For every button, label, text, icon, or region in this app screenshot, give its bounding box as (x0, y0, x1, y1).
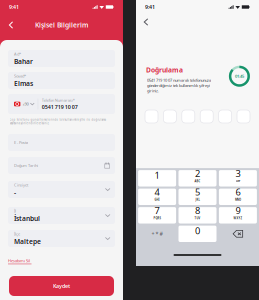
button[interactable]: E - Posta (8, 134, 115, 151)
button[interactable]: 2 (178, 170, 216, 186)
staticText: Soyad* (14, 73, 26, 78)
staticText: +90 (23, 101, 29, 107)
staticText: Cep Telefonu güncellemelerinde tek kulla… (9, 118, 105, 125)
staticText: PQRS (154, 216, 161, 220)
button[interactable]: Kaydet (9, 276, 114, 296)
button[interactable]: Soyad* (8, 72, 115, 89)
button[interactable]: Ad* (8, 50, 115, 67)
button[interactable]: Back (139, 14, 153, 30)
staticText: E - Posta (14, 140, 28, 145)
staticText: Maltepe (14, 237, 41, 246)
button[interactable]: 7 (138, 207, 176, 223)
button[interactable]: 9 (219, 207, 257, 223)
staticText: MNO (235, 198, 241, 201)
staticText: İlçe (14, 231, 20, 236)
staticText: 2 (195, 167, 200, 179)
staticText: 0541 719 10 07 numaralı telefonunuza gön… (147, 77, 211, 93)
button[interactable]: Cinsiyet (8, 181, 115, 198)
staticText: Doğrulama (146, 66, 183, 74)
staticText: Bahar (14, 57, 33, 66)
staticText: JKL (195, 198, 199, 201)
button[interactable]: İlçe (8, 230, 115, 247)
button[interactable]: Hesabımı Sil (8, 258, 31, 264)
staticText: 01:45 (235, 73, 244, 79)
button[interactable]: 5 (178, 189, 216, 205)
button[interactable]: 0 (178, 226, 216, 242)
button[interactable]: 1 (138, 170, 176, 186)
staticText: Elmas (14, 79, 33, 88)
button[interactable]: 4 (138, 189, 176, 205)
staticText: Kaydet (53, 282, 70, 290)
staticText: - (14, 188, 16, 197)
staticText: 9 (235, 204, 240, 216)
button[interactable]: Back (3, 14, 18, 36)
staticText: İstanbul (14, 214, 40, 223)
staticText: Kişisel Bilgilerim (35, 21, 88, 29)
staticText: 4 (155, 186, 160, 198)
button[interactable]: Delete (219, 226, 257, 242)
staticText: 7 (155, 204, 160, 216)
staticText: ABC (194, 179, 200, 183)
staticText: Telefon Numarası* (42, 98, 75, 103)
button[interactable]: İl (8, 207, 115, 224)
button[interactable]: Symbols (138, 226, 176, 242)
staticText: 5 (195, 186, 200, 198)
staticText: Doğum Tarihi (14, 163, 38, 168)
staticText: Ad* (14, 51, 21, 56)
staticText: 6 (235, 186, 240, 198)
staticText: 0541 719 10 07 (42, 103, 78, 110)
staticText: TUV (194, 216, 200, 220)
staticText: Cinsiyet (14, 182, 28, 187)
staticText: 9:41 (9, 3, 19, 11)
button[interactable]: 3 (219, 170, 257, 186)
button[interactable]: Doğum Tarihi (8, 157, 115, 174)
button[interactable]: 6 (219, 189, 257, 205)
staticText: 1 (155, 169, 160, 181)
button[interactable]: 8 (178, 207, 216, 223)
staticText: GHI (155, 198, 160, 201)
staticText: DEF (236, 179, 240, 183)
staticText: 8 (195, 204, 200, 216)
staticText: + * # (152, 230, 163, 237)
staticText: WXYZ (233, 216, 242, 220)
staticText: Hesabımı Sil (8, 258, 30, 263)
staticText: 3 (235, 167, 240, 179)
button[interactable]: +90 (8, 94, 115, 114)
staticText: 9:41 (145, 3, 155, 11)
staticText: 0 (195, 224, 200, 237)
staticText: İl (14, 208, 16, 213)
